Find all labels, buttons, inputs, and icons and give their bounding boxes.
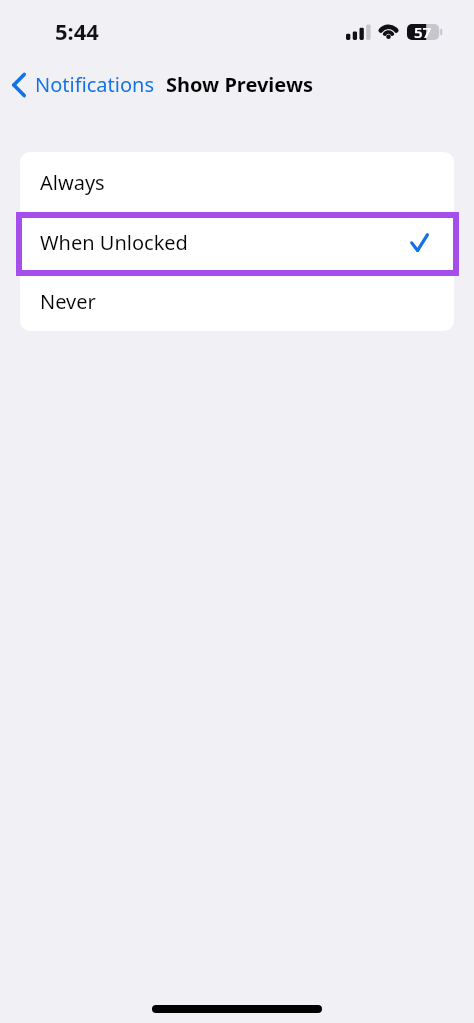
button[interactable]: When Unlocked <box>20 212 454 272</box>
staticText: 5:44 <box>55 16 99 46</box>
staticText: Notifications <box>35 71 154 98</box>
staticText: Never <box>40 288 96 315</box>
staticText: Show Previews <box>166 71 314 98</box>
other: Selected <box>410 233 429 252</box>
staticText: 57 <box>414 22 432 38</box>
other: Wi-Fi connected <box>378 24 399 40</box>
button[interactable]: Always <box>20 152 454 212</box>
other: Battery 57 percent <box>407 24 443 40</box>
staticText: Always <box>40 169 105 196</box>
other: Cellular signal strength <box>346 24 370 40</box>
button[interactable]: Never <box>20 272 454 331</box>
staticText: When Unlocked <box>40 229 188 256</box>
button[interactable]: Notifications <box>9 68 157 101</box>
